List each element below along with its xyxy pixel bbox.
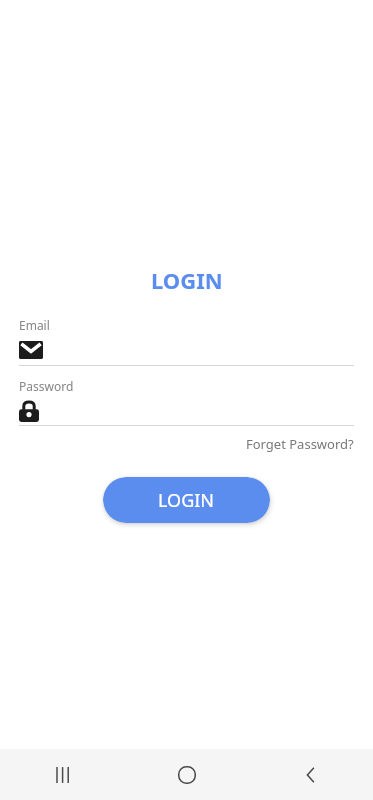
button[interactable]: [19, 339, 354, 361]
button[interactable]: Back: [249, 749, 373, 800]
button[interactable]: [19, 400, 354, 422]
button[interactable]: Home: [125, 749, 249, 800]
button[interactable]: Recent apps: [0, 749, 125, 800]
button[interactable]: Forget Password?: [246, 432, 354, 456]
staticText: Email: [19, 317, 50, 333]
staticText: Password: [19, 378, 74, 394]
button[interactable]: LOGIN: [103, 477, 270, 523]
staticText: LOGIN: [151, 265, 223, 295]
staticText: Forget Password?: [246, 435, 354, 453]
staticText: LOGIN: [158, 488, 215, 513]
